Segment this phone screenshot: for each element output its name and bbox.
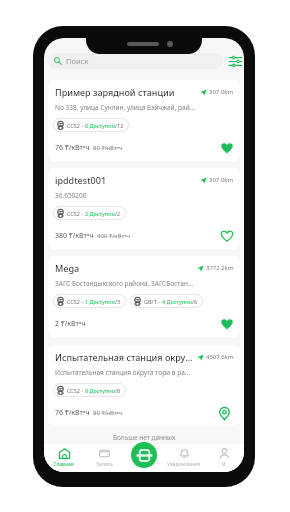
- staticText: /8: [115, 387, 121, 394]
- button[interactable]: Уведомления: [164, 446, 204, 470]
- staticText: Я: [222, 461, 226, 468]
- button[interactable]: Charge: [131, 442, 157, 468]
- staticText: CCS2 -: [67, 298, 85, 305]
- button[interactable]: Filter: [228, 54, 242, 68]
- button[interactable]: Locate: [213, 402, 235, 424]
- staticText: 36.650200: [55, 191, 87, 200]
- button[interactable]: Главная: [44, 446, 84, 470]
- staticText: GB/T -: [144, 298, 162, 305]
- staticText: 0 Доступно: [85, 387, 115, 394]
- staticText: 2 ₸/кВт•ч: [55, 319, 86, 329]
- button[interactable]: CCS2 -: [54, 295, 125, 307]
- staticText: ЗАГС Бостандыкского района, ЗАГСБостан..…: [55, 279, 194, 288]
- button[interactable]: Favorite: [220, 141, 234, 155]
- button[interactable]: Испытательная станция округа...: [48, 345, 240, 426]
- staticText: ipddtest001: [55, 174, 197, 186]
- staticText: No 338, улица Сунлин, улица Бэйчжай, рай…: [55, 103, 195, 112]
- button[interactable]: Пример зарядной станции: [48, 80, 240, 161]
- staticText: Испытательная станция округа...: [55, 351, 194, 363]
- button[interactable]: CCS2 -: [54, 207, 125, 219]
- staticText: Mega: [55, 262, 194, 274]
- staticText: /6: [192, 298, 198, 305]
- button[interactable]: CCS2 -: [54, 384, 125, 396]
- staticText: 4507.6km: [206, 353, 234, 361]
- button[interactable]: ipddtest001: [48, 168, 240, 249]
- staticText: Запись: [96, 461, 113, 468]
- staticText: 400 ₸/кВт•ч: [97, 232, 131, 240]
- staticText: Испытательная станция округа тори в ра..…: [55, 368, 190, 377]
- staticText: Пример зарядной станции: [55, 86, 197, 98]
- staticText: 380 ₸/кВт•ч: [55, 231, 94, 241]
- staticText: CCS2 -: [67, 122, 85, 129]
- staticText: /2: [115, 210, 121, 217]
- staticText: Больше нет данных: [113, 433, 176, 442]
- staticText: 0 Доступно: [85, 122, 115, 129]
- staticText: 80 ₸/кВт•ч: [93, 409, 123, 417]
- staticText: /12: [115, 122, 124, 129]
- staticText: Уведомления: [167, 461, 201, 468]
- button[interactable]: GB/T -: [131, 295, 202, 307]
- staticText: 80 ₸/кВт•ч: [93, 144, 123, 152]
- button[interactable]: Я: [204, 446, 244, 470]
- staticText: Главная: [54, 461, 74, 468]
- staticText: 307.0km: [209, 88, 234, 96]
- staticText: 1 Доступно: [85, 298, 115, 305]
- staticText: 76 ₸/кВт•ч: [55, 143, 90, 153]
- button[interactable]: Favorite: [220, 229, 234, 243]
- staticText: 307.0km: [209, 176, 234, 184]
- staticText: Поиск: [66, 56, 89, 66]
- staticText: /3: [115, 298, 121, 305]
- button[interactable]: Favorite: [220, 317, 234, 331]
- staticText: CCS2 -: [67, 210, 85, 217]
- button[interactable]: CCS2 -: [54, 119, 128, 131]
- staticText: CCS2 -: [67, 387, 85, 394]
- button[interactable]: Запись: [84, 446, 124, 470]
- button[interactable]: Mega: [48, 256, 240, 337]
- button[interactable]: Поиск: [48, 53, 223, 69]
- staticText: 2 Доступно: [85, 210, 115, 217]
- staticText: 4 Доступно: [162, 298, 192, 305]
- staticText: 76 ₸/кВт•ч: [55, 408, 90, 418]
- staticText: 3772.2km: [206, 264, 234, 272]
